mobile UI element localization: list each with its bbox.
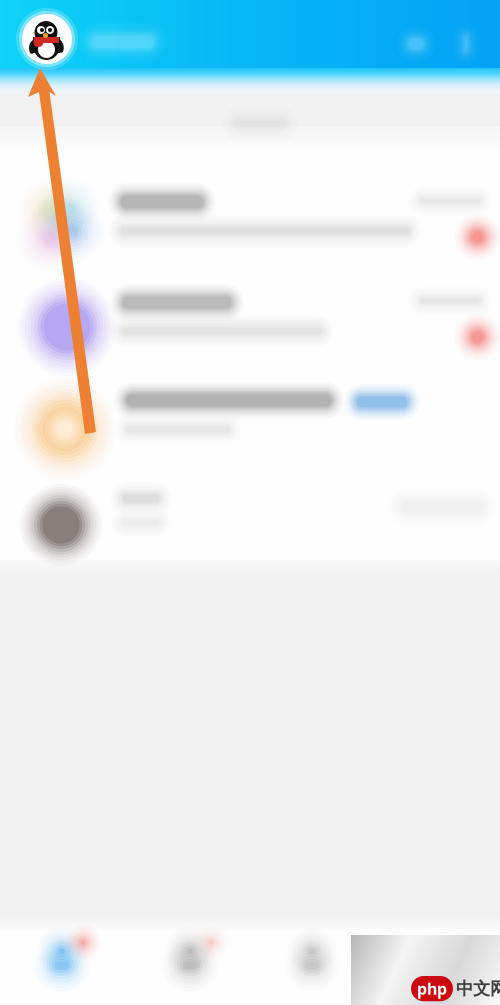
button[interactable]: Profile [17,9,77,69]
button[interactable]: Discover [250,925,374,1005]
staticText: php [417,978,447,999]
button[interactable]: Messages [0,925,124,1005]
button[interactable]: Contacts [128,925,252,1005]
staticText: 中文网 [456,978,500,999]
